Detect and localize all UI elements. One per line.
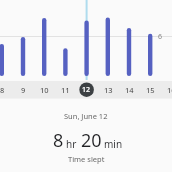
staticText: 20: [81, 128, 102, 153]
button[interactable]: 11: [55, 82, 75, 98]
staticText: 11: [61, 85, 70, 95]
staticText: 16: [167, 85, 172, 95]
button[interactable]: 10: [34, 82, 54, 98]
button[interactable]: 15: [140, 82, 160, 98]
staticText: 14: [125, 85, 134, 95]
staticText: 13: [104, 85, 113, 95]
button[interactable]: 8: [0, 82, 12, 98]
button[interactable]: 12: [79, 82, 94, 97]
staticText: 15: [146, 85, 155, 95]
staticText: 12: [82, 85, 91, 95]
staticText: 8: [53, 128, 64, 153]
staticText: 9: [21, 85, 26, 95]
button[interactable]: 13: [98, 82, 118, 98]
staticText: 10: [40, 85, 49, 95]
staticText: Time slept: [68, 154, 105, 164]
button[interactable]: 16: [161, 82, 172, 98]
staticText: min: [104, 137, 123, 151]
staticText: hr: [66, 137, 77, 151]
button[interactable]: 9: [13, 82, 33, 98]
staticText: 6: [158, 32, 163, 42]
button[interactable]: 14: [119, 82, 139, 98]
button[interactable]: [77, 82, 97, 98]
staticText: 8: [0, 85, 5, 95]
staticText: Sun, June 12: [64, 111, 108, 121]
